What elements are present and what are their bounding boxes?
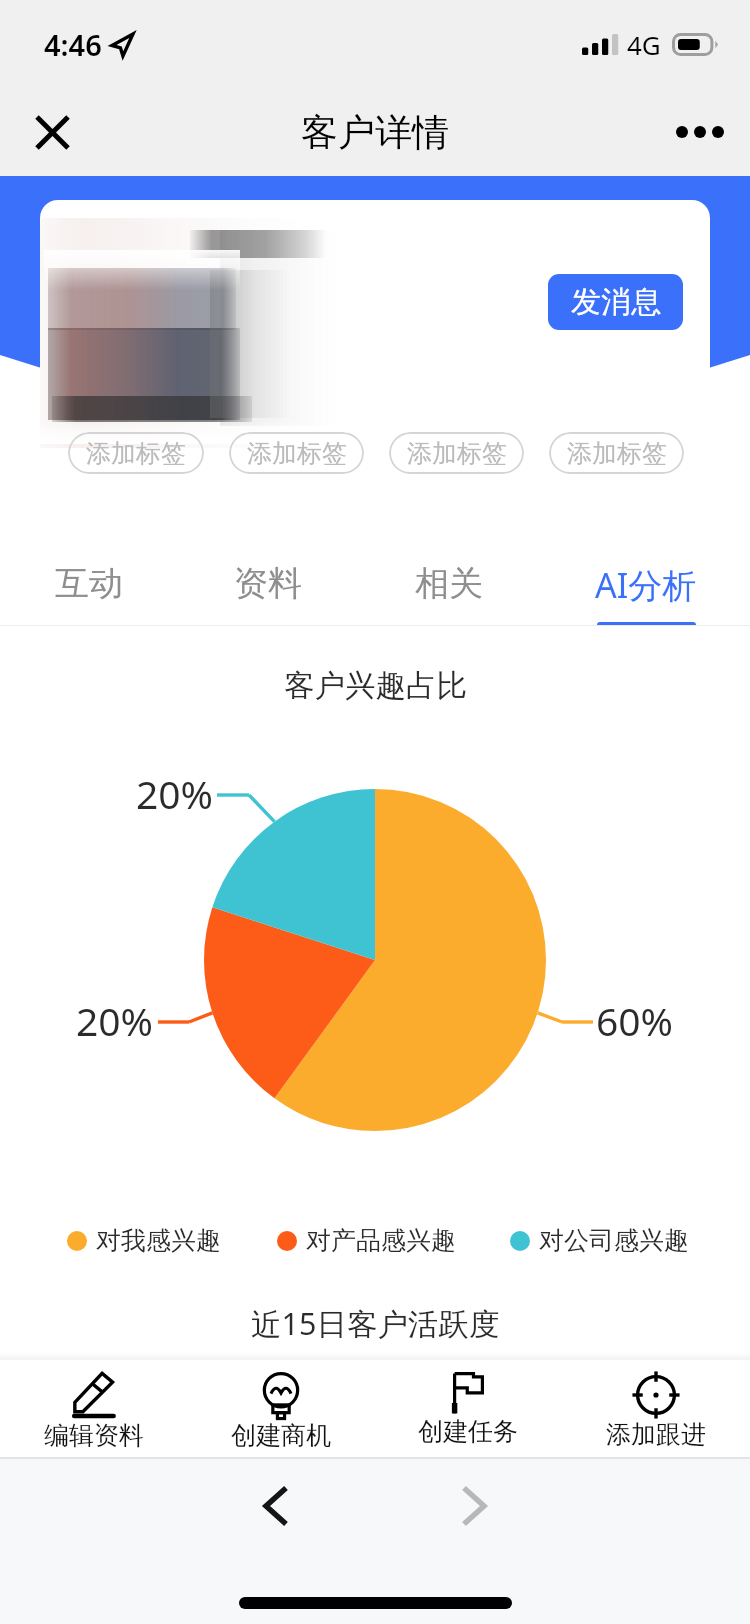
button[interactable]: 添加标签 bbox=[229, 432, 364, 474]
staticText: 20% bbox=[136, 767, 214, 820]
button[interactable]: 资料 bbox=[213, 562, 323, 648]
button[interactable]: Back bbox=[240, 1470, 312, 1542]
staticText: AI分析 bbox=[595, 562, 697, 608]
staticText: 20% bbox=[76, 994, 154, 1047]
button[interactable]: More options bbox=[666, 98, 734, 166]
staticText: 互动 bbox=[55, 562, 123, 605]
staticText: 相关 bbox=[415, 562, 483, 605]
staticText: 客户详情 bbox=[301, 109, 449, 156]
button[interactable]: 创建任务 bbox=[374, 1360, 562, 1458]
staticText: 添加标签 bbox=[567, 438, 667, 469]
staticText: 对公司感兴趣 bbox=[539, 1225, 689, 1256]
staticText: 添加标签 bbox=[247, 438, 347, 469]
staticText: 添加标签 bbox=[407, 438, 507, 469]
staticText: 创建商机 bbox=[231, 1420, 331, 1451]
staticText: 近15日客户活跃度 bbox=[251, 1302, 500, 1344]
button[interactable]: AI分析 bbox=[571, 562, 721, 648]
button[interactable]: Forward bbox=[438, 1470, 510, 1542]
staticText: 创建任务 bbox=[418, 1416, 518, 1447]
staticText: 4:46 bbox=[44, 25, 102, 64]
staticText: 对我感兴趣 bbox=[96, 1225, 221, 1256]
staticText: 对产品感兴趣 bbox=[306, 1225, 456, 1256]
staticText: 资料 bbox=[234, 562, 302, 605]
staticText: 添加跟进 bbox=[606, 1419, 706, 1450]
button[interactable]: 添加标签 bbox=[68, 432, 204, 474]
button[interactable]: 相关 bbox=[394, 562, 504, 648]
button[interactable]: 添加跟进 bbox=[562, 1360, 750, 1458]
staticText: 4G bbox=[627, 27, 661, 62]
button[interactable]: 编辑资料 bbox=[0, 1360, 187, 1458]
staticText: 发消息 bbox=[571, 283, 661, 321]
button[interactable]: Close bbox=[18, 98, 86, 166]
button[interactable]: 创建商机 bbox=[187, 1360, 374, 1458]
button[interactable]: 添加标签 bbox=[549, 432, 684, 474]
staticText: 60% bbox=[596, 994, 674, 1047]
staticText: 编辑资料 bbox=[44, 1420, 144, 1451]
staticText: 添加标签 bbox=[86, 438, 186, 469]
staticText: 客户兴趣占比 bbox=[284, 667, 467, 705]
button[interactable]: 添加标签 bbox=[389, 432, 524, 474]
button[interactable]: 互动 bbox=[34, 562, 144, 648]
button[interactable]: 发消息 bbox=[548, 274, 683, 330]
